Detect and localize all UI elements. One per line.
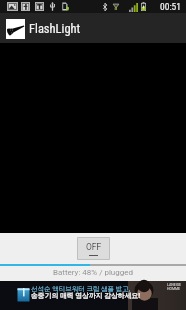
staticText: 00:51	[160, 1, 181, 12]
button[interactable]: Advertisement banner	[0, 281, 186, 310]
staticText: OFF	[86, 242, 102, 252]
staticText: 선석순 액티브워터 크림 샘플 받고,	[31, 284, 131, 293]
staticText: LANEIGE HOMME	[167, 283, 182, 291]
staticText: FlashLight	[29, 21, 81, 36]
button[interactable]: OFF	[78, 238, 109, 259]
staticText: Battery: 48% / plugged	[53, 268, 134, 277]
staticText: 송중기의 매력 영상까지 감상하세요!	[31, 291, 141, 300]
